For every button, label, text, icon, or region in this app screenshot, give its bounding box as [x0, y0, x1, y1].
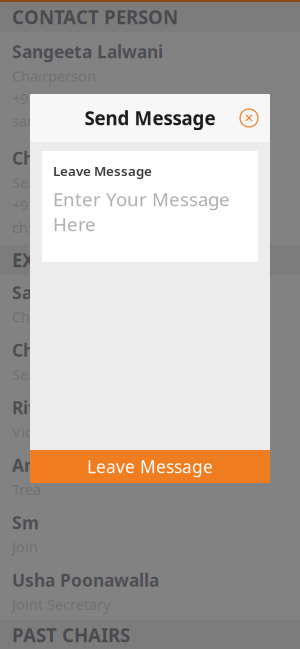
button[interactable]: Ritu [0, 390, 300, 447]
staticText: Cha [12, 307, 38, 326]
staticText: Trea [12, 479, 41, 499]
staticText: chri [12, 217, 38, 237]
staticText: Usha Poonawalla [12, 568, 159, 591]
staticText: Sm [12, 511, 39, 534]
staticText: Chr [12, 146, 42, 169]
staticText: PAST CHAIRS [12, 622, 130, 647]
staticText: Vice [12, 422, 40, 441]
staticText: Chr [12, 338, 42, 361]
staticText: Enter Your Message Here [53, 187, 230, 236]
button[interactable]: Sangeeta Lalwani [0, 32, 300, 139]
staticText: ✕ [244, 111, 254, 125]
staticText: Send Message [84, 106, 215, 130]
button[interactable]: And [0, 447, 300, 505]
staticText: Leave Message [87, 455, 213, 478]
staticText: Join [12, 537, 38, 556]
staticText: Leave Message [53, 162, 152, 180]
staticText: Sen [12, 364, 37, 384]
button[interactable]: Chr [0, 332, 300, 390]
staticText: Ritu [12, 396, 47, 419]
button[interactable]: Leave Message [30, 450, 270, 483]
button[interactable]: Close [236, 105, 262, 131]
staticText: Sen [12, 172, 37, 192]
staticText: sangeeta@mail.com [12, 111, 151, 130]
staticText: Joint Secretary [12, 594, 110, 614]
button[interactable]: San [0, 275, 300, 332]
button[interactable]: Chr [0, 138, 300, 245]
button[interactable]: Usha Poonawalla [0, 562, 300, 620]
staticText: And [12, 453, 46, 476]
staticText: Chairperson [12, 66, 96, 86]
staticText: +91 9876543210 [12, 89, 120, 108]
button[interactable]: Sm [0, 505, 300, 562]
staticText: CONTACT PERSON [12, 5, 178, 29]
staticText: Sangeeta Lalwani [12, 40, 163, 63]
staticText: EX [12, 248, 35, 272]
staticText: +91 [12, 195, 36, 214]
staticText: San [12, 281, 43, 304]
